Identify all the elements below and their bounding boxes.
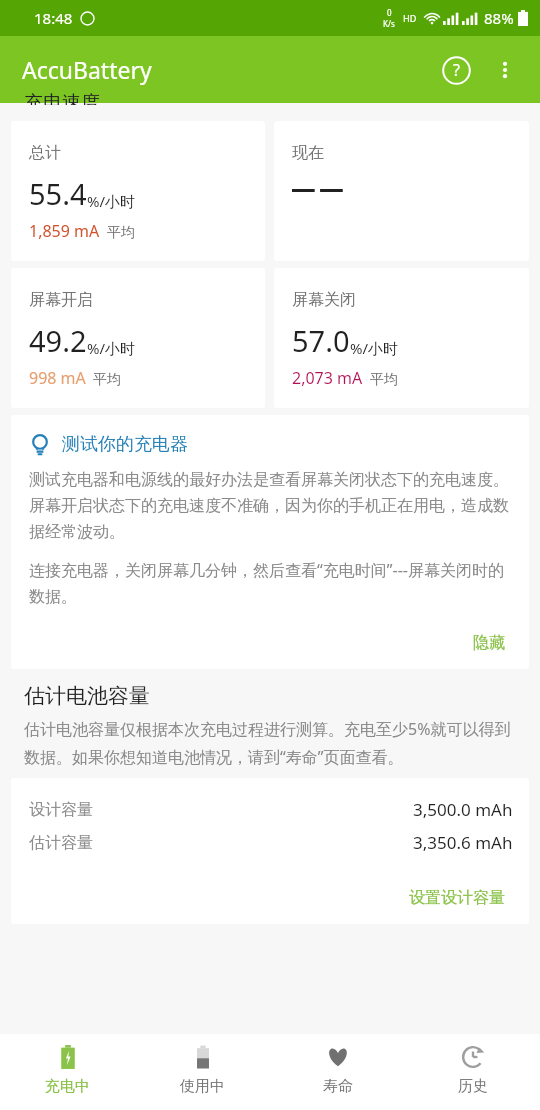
button[interactable]: 寿命 [270, 1034, 405, 1110]
staticText: 连接充电器，关闭屏幕几分钟，然后查看“充电时间”---屏幕关闭时的数据。 [29, 559, 513, 607]
staticText: 3,500.0 mAh [413, 798, 513, 821]
staticText: 使用中 [180, 1077, 225, 1096]
staticText: 估计电池容量仅根据本次充电过程进行测算。充电至少5%就可以得到数据。如果你想知道… [24, 718, 516, 768]
staticText: %/小时 [87, 191, 136, 211]
staticText: 充电中 [45, 1077, 90, 1096]
staticText: 屏幕关闭 [292, 290, 356, 310]
staticText: 测试你的充电器 [62, 433, 188, 456]
button[interactable]: 现在 [274, 121, 529, 261]
staticText: AccuBattery [22, 54, 152, 85]
button[interactable]: 使用中 [135, 1034, 270, 1110]
staticText: 充电速度 [24, 91, 100, 105]
staticText: 历史 [458, 1077, 488, 1096]
button[interactable]: Help [434, 48, 478, 92]
staticText: 18:48 [34, 8, 73, 28]
staticText: 测试充电器和电源线的最好办法是查看屏幕关闭状态下的充电速度。屏幕开启状态下的充电… [29, 470, 513, 542]
staticText: 2,073 mA [292, 367, 363, 389]
staticText: 49.2 [29, 321, 87, 360]
staticText: 隐藏 [473, 633, 505, 653]
staticText: 55.4 [29, 174, 87, 213]
staticText: %/小时 [87, 338, 136, 358]
staticText: 57.0 [292, 321, 350, 360]
button[interactable]: More options [484, 49, 526, 91]
staticText: K/s [383, 18, 395, 29]
button[interactable]: 设置设计容量 [401, 884, 513, 912]
staticText: 寿命 [323, 1077, 353, 1096]
staticText: 估计电池容量 [24, 683, 150, 709]
button[interactable]: 屏幕开启 [11, 268, 265, 408]
button[interactable]: 历史 [405, 1034, 540, 1110]
button[interactable]: 隐藏 [465, 629, 513, 657]
staticText: 现在 [292, 143, 324, 163]
staticText: 设计容量 [29, 800, 93, 820]
staticText: 平均 [93, 371, 121, 389]
staticText: 3,350.6 mAh [413, 831, 513, 854]
staticText: 1,859 mA [29, 220, 100, 242]
staticText: HD [403, 12, 417, 24]
staticText: 设置设计容量 [409, 888, 505, 908]
button[interactable]: 屏幕关闭 [274, 268, 529, 408]
staticText: 平均 [370, 371, 398, 389]
staticText: 总计 [29, 143, 61, 163]
button[interactable]: 总计 [11, 121, 265, 261]
button[interactable]: 充电中 [0, 1034, 135, 1110]
staticText: 0 [387, 7, 392, 18]
staticText: 88% [484, 8, 514, 28]
staticText: %/小时 [350, 338, 399, 358]
staticText: 平均 [107, 224, 135, 242]
staticText: 估计容量 [29, 833, 93, 853]
staticText: ? [453, 59, 460, 81]
staticText: 998 mA [29, 367, 86, 389]
staticText: 屏幕开启 [29, 290, 93, 310]
